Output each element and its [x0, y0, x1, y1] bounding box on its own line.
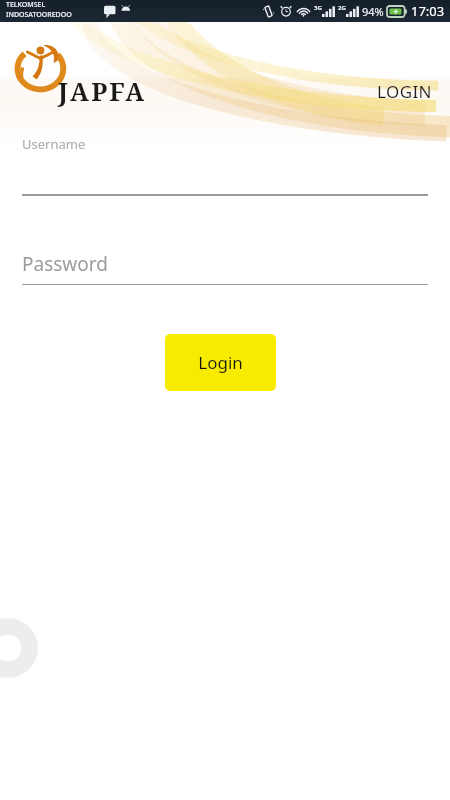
staticText: Login	[198, 351, 243, 374]
button[interactable]: Password	[0, 245, 450, 290]
staticText: TELKOMSEL	[6, 0, 46, 10]
staticText: Username	[22, 135, 86, 153]
staticText: 94%	[362, 4, 384, 19]
staticText: 3G	[314, 4, 322, 12]
staticText: INDOSATOOREDOO	[6, 10, 72, 20]
staticText: JAPFA	[58, 74, 147, 108]
staticText: LOGIN	[377, 80, 432, 103]
button[interactable]: Login	[165, 334, 276, 391]
staticText: 17:03	[411, 2, 445, 20]
staticText: 2G	[338, 4, 346, 12]
staticText: Password	[22, 251, 108, 277]
button[interactable]: LOGIN	[359, 76, 450, 107]
button[interactable]: Username	[0, 128, 450, 198]
